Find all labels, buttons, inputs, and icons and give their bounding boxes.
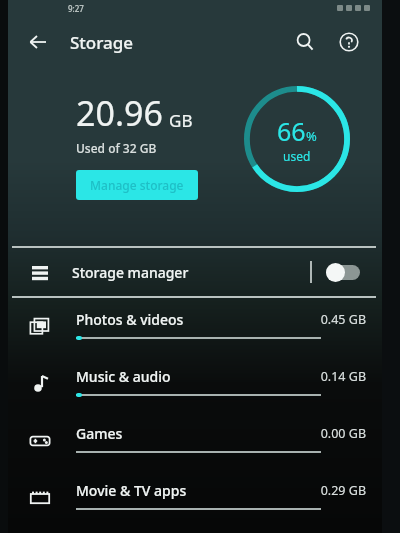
staticText: 9:27 — [68, 3, 84, 14]
button[interactable]: Storage manager toggle — [326, 263, 360, 282]
staticText: Used of 32 GB — [76, 140, 157, 156]
staticText: Photos & videos — [76, 310, 184, 329]
button[interactable]: Storage manager — [8, 248, 382, 296]
staticText: Games — [76, 424, 123, 443]
button[interactable]: Back — [20, 24, 56, 60]
staticText: Storage manager — [72, 263, 310, 282]
staticText: used — [283, 148, 311, 164]
staticText: 0.00 GB — [320, 425, 366, 442]
staticText: Storage — [70, 31, 134, 54]
staticText: 0.29 GB — [320, 482, 366, 499]
button[interactable]: Manage storage — [76, 170, 198, 200]
staticText: Movie & TV apps — [76, 481, 187, 500]
button[interactable]: Music & audio — [8, 355, 382, 412]
staticText: GB — [169, 109, 193, 132]
button[interactable]: Photos & videos — [8, 298, 382, 355]
staticText: 66 — [277, 114, 306, 148]
button[interactable]: Movie & TV apps — [8, 469, 382, 526]
staticText: 20.96 — [76, 90, 163, 136]
button[interactable]: Search — [288, 25, 322, 59]
staticText: Music & audio — [76, 367, 171, 386]
staticText: % — [306, 127, 317, 145]
button[interactable]: Games — [8, 412, 382, 469]
button[interactable]: Help — [332, 25, 366, 59]
staticText: 0.14 GB — [320, 368, 366, 385]
staticText: Manage storage — [90, 177, 184, 193]
staticText: 0.45 GB — [320, 311, 366, 328]
